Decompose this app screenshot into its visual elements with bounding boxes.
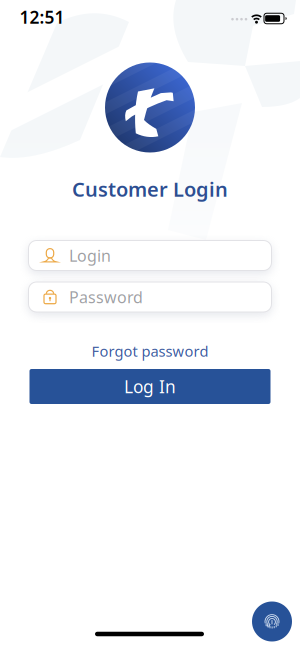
- staticText: Log In: [124, 375, 176, 398]
- staticText: 12:51: [19, 5, 64, 28]
- staticText: Password: [69, 286, 143, 308]
- staticText: Customer Login: [72, 176, 228, 202]
- button[interactable]: Log In: [29, 369, 270, 404]
- staticText: Forgot password: [91, 341, 208, 361]
- button[interactable]: Forgot password: [91, 341, 208, 361]
- staticText: Login: [69, 245, 111, 266]
- button[interactable]: Password: [28, 282, 271, 312]
- button[interactable]: Login: [28, 240, 271, 270]
- button[interactable]: Log in with fingerprint: [252, 601, 292, 641]
